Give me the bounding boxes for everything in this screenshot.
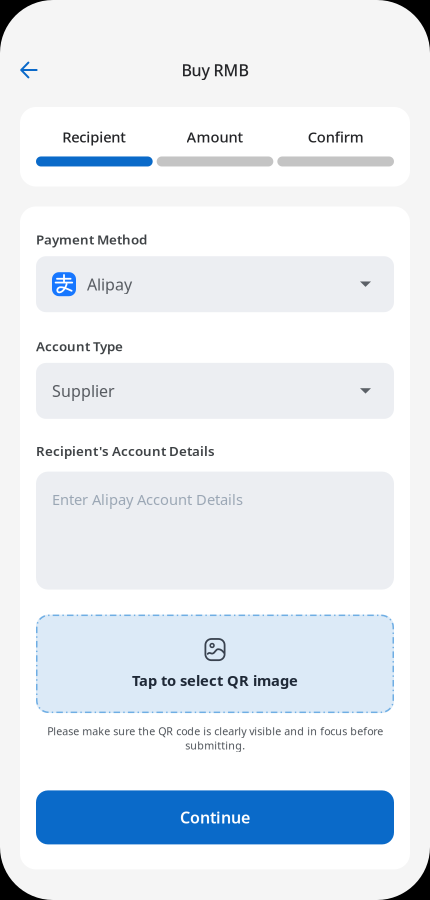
staticText: Recipient	[62, 127, 126, 146]
staticText: Recipient's Account Details	[36, 442, 215, 460]
staticText: Tap to select QR image	[132, 671, 298, 690]
staticText: Account Type	[36, 337, 123, 355]
button[interactable]: Tap to select QR image	[36, 615, 394, 713]
staticText: Payment Method	[36, 230, 147, 248]
button[interactable]: Alipay	[36, 256, 394, 312]
staticText: Confirm	[308, 127, 364, 146]
staticText: Amount	[186, 127, 243, 146]
staticText: Alipay	[87, 274, 132, 295]
staticText: Continue	[180, 807, 250, 828]
staticText: Supplier	[52, 380, 115, 401]
button[interactable]: Supplier	[36, 363, 394, 419]
button[interactable]: Continue	[36, 790, 394, 844]
staticText: Buy RMB	[181, 59, 248, 81]
button[interactable]: Enter Alipay Account Details	[36, 472, 394, 590]
button[interactable]: Back	[10, 51, 48, 89]
staticText: Please make sure the QR code is clearly …	[47, 724, 383, 752]
staticText: Enter Alipay Account Details	[52, 490, 243, 509]
